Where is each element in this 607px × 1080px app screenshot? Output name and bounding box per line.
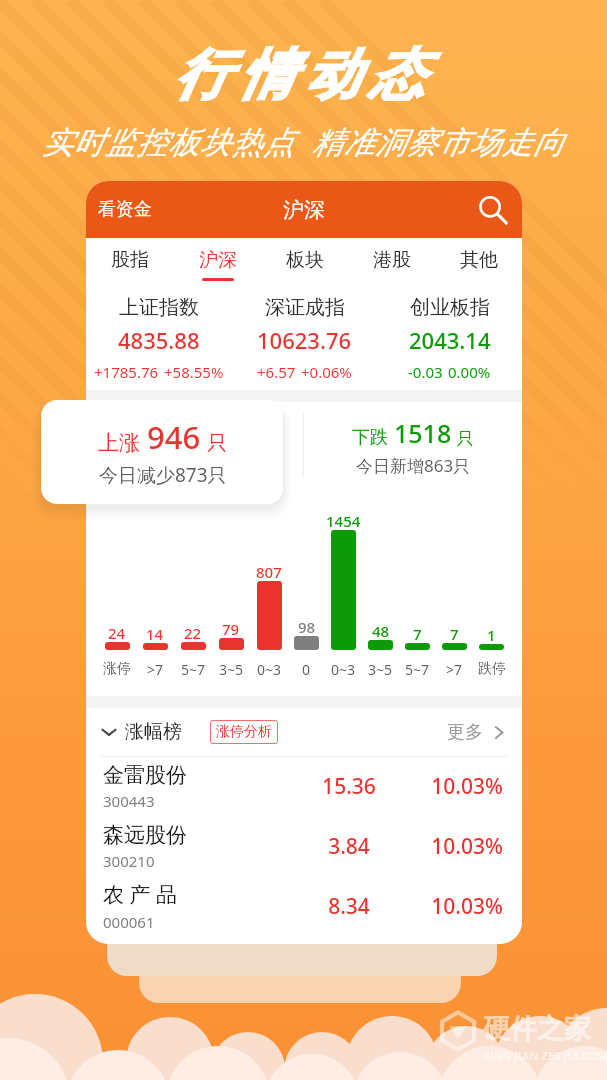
staticText: 行情动态 xyxy=(169,41,429,109)
staticText: 0~3 xyxy=(331,660,356,679)
button[interactable]: 金雷股份 xyxy=(86,756,522,816)
staticText: 14 xyxy=(146,624,164,644)
staticText: 7 xyxy=(413,624,422,644)
button[interactable]: 农 产 品 xyxy=(86,876,522,936)
staticText: 深证成指 xyxy=(265,295,345,320)
button[interactable]: 沪深 xyxy=(174,238,261,281)
staticText: 上涨 xyxy=(98,430,140,456)
button[interactable]: 看资金 xyxy=(86,191,159,228)
staticText: 10623.76 xyxy=(257,325,352,355)
button[interactable]: 上证指数 xyxy=(86,295,232,382)
staticText: 79 xyxy=(222,619,240,639)
staticText: 0 xyxy=(302,660,311,679)
staticText: 创业板指 xyxy=(410,295,490,320)
staticText: 农 产 品 xyxy=(103,880,177,909)
button[interactable]: 创业板指 xyxy=(377,295,522,382)
button[interactable]: 港股 xyxy=(348,238,435,281)
staticText: 22 xyxy=(184,623,202,643)
staticText: 10.03% xyxy=(391,772,503,801)
button[interactable]: Search xyxy=(476,194,508,226)
staticText: 300443 xyxy=(103,791,155,811)
staticText: 3~5 xyxy=(219,660,244,679)
staticText: >7 xyxy=(147,660,164,679)
staticText: 5~7 xyxy=(405,660,430,679)
staticText: +0.06% xyxy=(301,362,352,382)
staticText: 其他 xyxy=(460,248,498,272)
staticText: 10.03% xyxy=(391,832,503,861)
staticText: 0~3 xyxy=(257,660,282,679)
button[interactable]: 深证成指 xyxy=(232,295,377,382)
staticText: 只 xyxy=(457,428,474,449)
staticText: 3.84 xyxy=(289,832,409,861)
button[interactable]: 涨幅榜 xyxy=(101,720,182,744)
staticText: 0.00% xyxy=(448,362,491,382)
staticText: >7 xyxy=(446,660,463,679)
staticText: 森远股份 xyxy=(103,822,187,848)
staticText: 7 xyxy=(450,624,459,644)
staticText: 只 xyxy=(207,431,227,456)
staticText: YING JIAN ZHI JIA.COM xyxy=(483,1048,607,1063)
staticText: 24 xyxy=(108,623,126,643)
staticText: 1 xyxy=(487,625,496,645)
staticText: +6.57 xyxy=(257,362,296,382)
staticText: 更多 xyxy=(447,721,483,744)
staticText: 300210 xyxy=(103,851,155,871)
staticText: 1518 xyxy=(394,416,452,450)
staticText: 2043.14 xyxy=(409,325,491,355)
staticText: 15.36 xyxy=(289,772,409,801)
staticText: 48 xyxy=(372,621,390,641)
staticText: +1785.76 xyxy=(94,362,159,382)
staticText: 807 xyxy=(256,562,282,582)
button[interactable]: 股指 xyxy=(86,238,174,281)
staticText: 10.03% xyxy=(391,892,503,921)
button[interactable]: 涨停分析 xyxy=(210,720,278,744)
staticText: 股指 xyxy=(111,248,149,272)
staticText: 港股 xyxy=(373,248,411,272)
button[interactable]: 森远股份 xyxy=(86,816,522,876)
staticText: 今日减少873只 xyxy=(99,462,227,488)
staticText: +58.55% xyxy=(164,362,224,382)
staticText: 涨停 xyxy=(103,660,131,678)
staticText: 98 xyxy=(298,617,316,637)
button[interactable]: 其他 xyxy=(435,238,522,281)
staticText: 下跌 xyxy=(352,426,388,449)
staticText: 跌停 xyxy=(478,660,506,678)
button[interactable]: 板块 xyxy=(261,238,348,281)
staticText: 板块 xyxy=(286,248,324,272)
button[interactable]: 上涨 xyxy=(41,400,283,504)
staticText: 沪深 xyxy=(283,197,325,223)
staticText: 4835.88 xyxy=(118,325,200,355)
staticText: 涨停分析 xyxy=(216,723,272,741)
staticText: 3~5 xyxy=(368,660,393,679)
button[interactable]: 更多 xyxy=(447,721,505,744)
staticText: 上证指数 xyxy=(119,295,199,320)
staticText: 涨幅榜 xyxy=(125,720,182,744)
staticText: 实时监控板块热点 精准洞察市场走向 xyxy=(42,120,565,162)
staticText: -0.03 xyxy=(408,362,443,382)
staticText: 000061 xyxy=(103,912,155,932)
staticText: 硬件之家 xyxy=(483,1012,591,1046)
staticText: 8.34 xyxy=(289,892,409,921)
staticText: 金雷股份 xyxy=(103,762,187,788)
staticText: 1454 xyxy=(326,511,361,531)
staticText: 946 xyxy=(147,416,201,458)
staticText: 沪深 xyxy=(199,248,237,272)
staticText: 5~7 xyxy=(181,660,206,679)
staticText: 今日新增863只 xyxy=(356,454,471,477)
